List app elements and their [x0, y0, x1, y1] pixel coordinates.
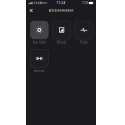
- button[interactable]: Close: [27, 6, 35, 14]
- button[interactable]: Bounce: [30, 49, 48, 72]
- staticText: Blend: [57, 41, 66, 44]
- staticText: 11:24: [56, 1, 65, 5]
- staticText: Select animation: [48, 9, 73, 12]
- staticText: Pulse: [80, 41, 88, 44]
- button[interactable]: Blend: [53, 21, 71, 44]
- staticText: Sun light: [33, 41, 46, 44]
- staticText: 75%: [82, 1, 88, 5]
- button[interactable]: Sun light: [30, 21, 48, 44]
- staticText: Vodafone: [34, 1, 48, 5]
- staticText: Bounce: [34, 69, 45, 72]
- button[interactable]: Pulse: [75, 21, 93, 44]
